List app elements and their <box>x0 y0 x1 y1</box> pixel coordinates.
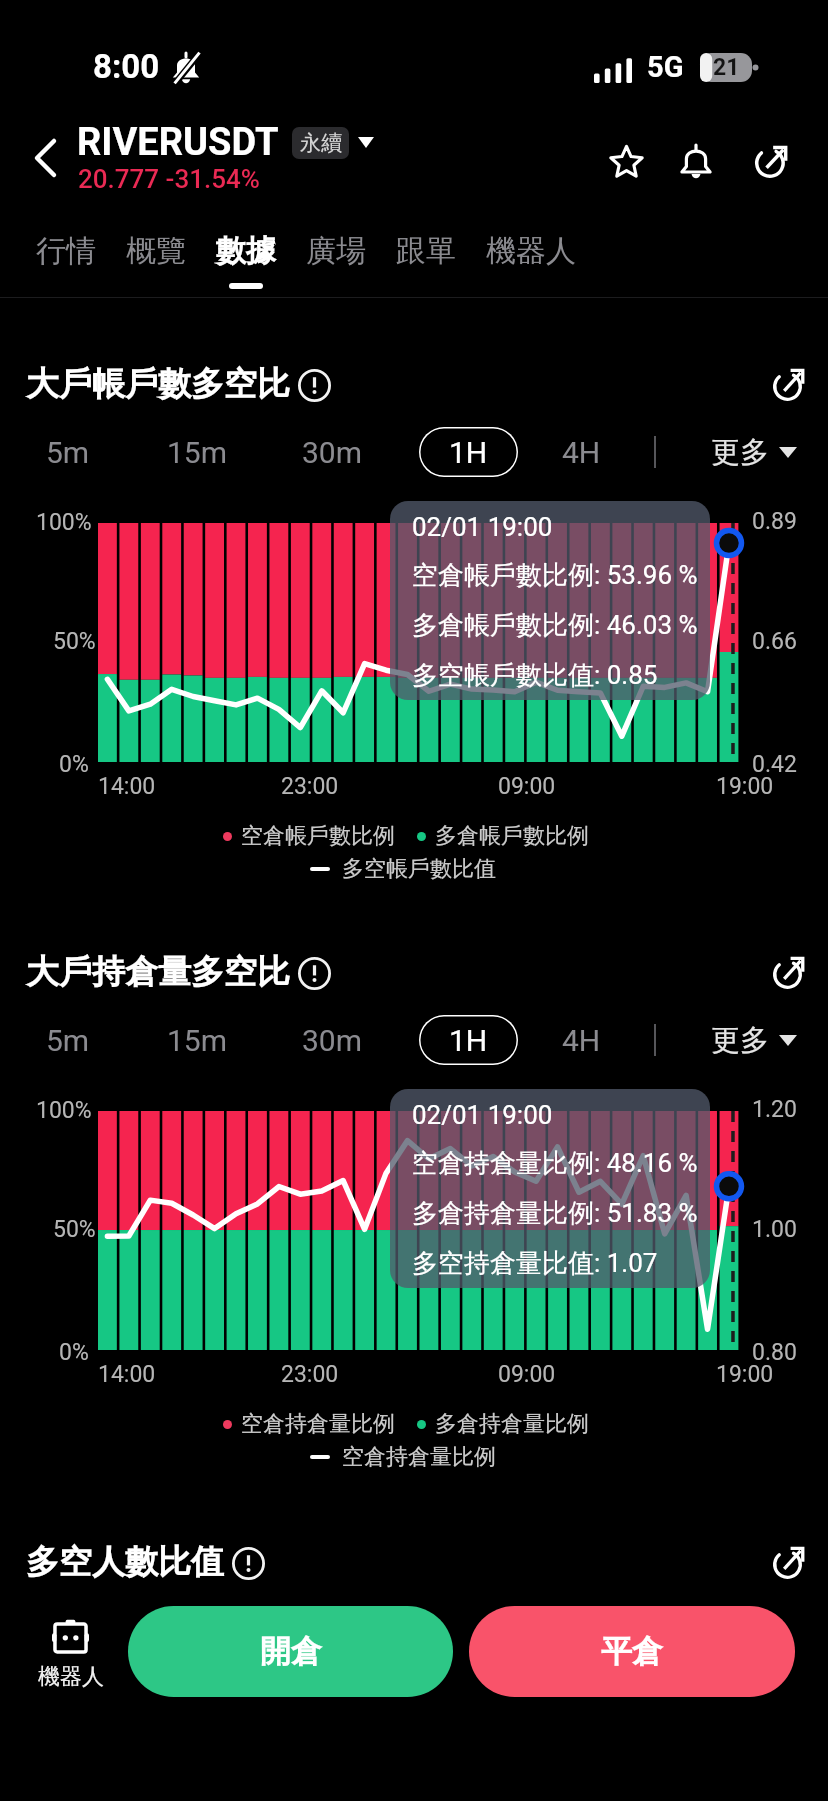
staticText: 30m <box>302 1023 363 1058</box>
staticText: 1H <box>449 1023 488 1058</box>
staticText: 5m <box>46 1023 90 1058</box>
staticText: 1H <box>449 435 488 470</box>
button[interactable]: 空倉持倉量比例 <box>223 1410 395 1438</box>
staticText: 更多 <box>711 434 769 471</box>
staticText: 5m <box>46 435 90 470</box>
staticText: 50% <box>53 1216 96 1243</box>
button[interactable]: 30m <box>268 426 396 478</box>
button[interactable]: 大戶持倉量多空比 <box>26 950 331 994</box>
staticText: 30m <box>302 435 363 470</box>
staticText: 多空帳戶數比值: 0.85 <box>412 659 658 692</box>
staticText: 多空帳戶數比值 <box>342 855 496 883</box>
button[interactable]: 5m <box>4 1014 132 1066</box>
button[interactable]: 開倉 <box>128 1606 453 1697</box>
staticText: 20.777 -31.54% <box>78 164 260 194</box>
staticText: 機器人 <box>38 1663 104 1691</box>
staticText: 多倉持倉量比例: 51.83 % <box>412 1197 698 1230</box>
button[interactable]: 多倉持倉量比例 <box>417 1410 589 1438</box>
staticText: 空倉持倉量比例: 48.16 % <box>412 1147 698 1180</box>
button[interactable]: 多空人數比值 <box>26 1540 265 1584</box>
button[interactable]: Expand chart <box>761 1534 817 1590</box>
button[interactable]: 機器人 <box>32 1619 109 1691</box>
button[interactable]: Alerts <box>661 126 731 196</box>
button[interactable]: 更多 <box>702 1014 806 1066</box>
staticText: 大戶帳戶數多空比 <box>26 363 290 405</box>
button[interactable]: 更多 <box>702 426 806 478</box>
button[interactable]: 永續 <box>292 127 349 159</box>
staticText: 100% <box>36 1097 92 1124</box>
staticText: 開倉 <box>260 1632 322 1671</box>
button[interactable]: Expand chart <box>761 944 817 1000</box>
button[interactable]: 空倉帳戶數比例 <box>223 822 395 850</box>
staticText: 多倉持倉量比例 <box>435 1410 589 1438</box>
staticText: 永續 <box>300 130 342 156</box>
button[interactable]: 機器人 <box>486 208 576 289</box>
button[interactable]: 4H <box>518 1014 644 1066</box>
staticText: 廣場 <box>306 232 366 270</box>
staticText: 15m <box>167 435 228 470</box>
staticText: 19:00 <box>716 1361 774 1388</box>
staticText: 09:00 <box>498 773 556 800</box>
staticText: RIVERUSDT <box>77 120 279 165</box>
button[interactable]: 跟單 <box>396 208 456 289</box>
button[interactable]: 多空帳戶數比值 <box>310 855 496 883</box>
staticText: 多空持倉量比值: 1.07 <box>412 1247 658 1280</box>
staticText: 19:00 <box>716 773 774 800</box>
staticText: 4H <box>562 435 601 470</box>
staticText: 空倉持倉量比例 <box>241 1410 395 1438</box>
button[interactable]: 行情 <box>36 208 96 289</box>
staticText: 5G <box>647 50 684 84</box>
staticText: 大戶持倉量多空比 <box>26 951 290 993</box>
button[interactable]: 廣場 <box>306 208 366 289</box>
staticText: 0.66 <box>752 628 797 655</box>
button[interactable]: 4H <box>518 426 644 478</box>
staticText: 21 <box>713 54 740 81</box>
button[interactable]: 多倉帳戶數比例 <box>417 822 589 850</box>
staticText: 更多 <box>711 1022 769 1059</box>
staticText: 數據 <box>216 232 276 270</box>
button[interactable]: 15m <box>133 426 261 478</box>
staticText: 多倉帳戶數比例 <box>435 822 589 850</box>
staticText: 0% <box>59 1339 89 1366</box>
button[interactable]: 數據 <box>216 208 276 289</box>
staticText: 14:00 <box>98 1361 156 1388</box>
staticText: 15m <box>167 1023 228 1058</box>
staticText: 02/01 19:00 <box>412 512 553 542</box>
staticText: 0% <box>59 751 89 778</box>
staticText: 0.42 <box>752 751 797 778</box>
staticText: 平倉 <box>601 1632 663 1671</box>
button[interactable]: 30m <box>268 1014 396 1066</box>
staticText: 0.80 <box>752 1339 797 1366</box>
button[interactable]: 15m <box>133 1014 261 1066</box>
staticText: 空倉帳戶數比例 <box>241 822 395 850</box>
button[interactable]: Favorite <box>591 126 661 196</box>
staticText: 多倉帳戶數比例: 46.03 % <box>412 609 698 642</box>
button[interactable]: Share <box>736 126 806 196</box>
staticText: 多空人數比值 <box>26 1541 224 1583</box>
button[interactable]: 空倉持倉量比例 <box>310 1443 496 1471</box>
button[interactable]: Expand chart <box>761 356 817 412</box>
button[interactable]: Back <box>20 133 70 183</box>
staticText: 14:00 <box>98 773 156 800</box>
staticText: 1.00 <box>752 1216 797 1243</box>
button[interactable]: 大戶帳戶數多空比 <box>26 362 331 406</box>
staticText: 4H <box>562 1023 601 1058</box>
staticText: 23:00 <box>281 773 339 800</box>
staticText: 100% <box>36 509 92 536</box>
staticText: 機器人 <box>486 232 576 270</box>
staticText: 09:00 <box>498 1361 556 1388</box>
button[interactable]: 1H <box>419 427 518 477</box>
staticText: 空倉持倉量比例 <box>342 1443 496 1471</box>
staticText: 50% <box>53 628 96 655</box>
staticText: 概覽 <box>126 232 186 270</box>
button[interactable]: 平倉 <box>469 1606 795 1697</box>
button[interactable]: 5m <box>4 426 132 478</box>
staticText: 行情 <box>36 232 96 270</box>
staticText: 23:00 <box>281 1361 339 1388</box>
staticText: 空倉帳戶數比例: 53.96 % <box>412 559 698 592</box>
button[interactable]: 概覽 <box>126 208 186 289</box>
staticText: 1.20 <box>752 1096 797 1123</box>
staticText: 0.89 <box>752 508 797 535</box>
button[interactable]: 1H <box>419 1015 518 1065</box>
staticText: 02/01 19:00 <box>412 1100 553 1130</box>
